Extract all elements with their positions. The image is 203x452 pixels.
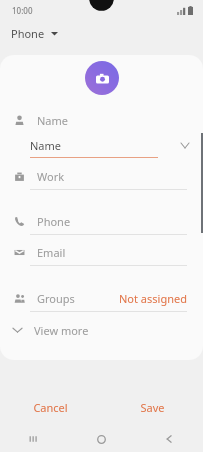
button[interactable]: Save [101, 388, 203, 426]
button[interactable]: Work [0, 163, 203, 190]
staticText: Email [37, 245, 66, 260]
staticText: 10:00 [12, 5, 33, 16]
staticText: Name [30, 138, 62, 153]
button[interactable]: Back [135, 426, 203, 452]
button[interactable]: Home [67, 426, 135, 452]
button[interactable]: Cancel [0, 388, 101, 426]
staticText: Cancel [33, 400, 68, 415]
button[interactable]: Add photo [85, 61, 119, 95]
staticText: Work [37, 169, 65, 184]
staticText: Name [37, 113, 69, 128]
staticText: Phone [11, 26, 45, 41]
button[interactable]: Name [0, 133, 203, 158]
staticText: Phone [37, 214, 71, 229]
button[interactable]: Phone [0, 208, 203, 235]
button[interactable]: Phone [0, 20, 203, 46]
button[interactable]: Email [0, 239, 203, 266]
staticText: View more [34, 323, 89, 338]
staticText: Save [140, 400, 165, 415]
button[interactable]: Groups [0, 285, 203, 312]
staticText: Not assigned [119, 291, 187, 306]
button[interactable]: View more [0, 316, 203, 344]
staticText: Groups [37, 291, 75, 306]
button[interactable]: Recents [0, 426, 67, 452]
button[interactable]: Name [0, 107, 203, 133]
